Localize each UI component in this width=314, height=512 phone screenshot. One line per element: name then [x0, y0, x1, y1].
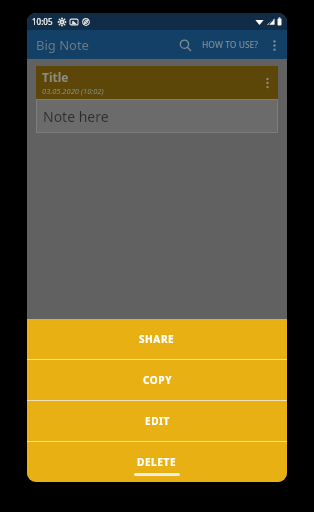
staticText: Big Note: [36, 36, 89, 54]
button[interactable]: Title: [36, 66, 278, 133]
staticText: Note here: [43, 107, 109, 126]
staticText: 10:05: [32, 16, 53, 27]
button[interactable]: More options: [263, 34, 285, 56]
staticText: HOW TO USE?: [202, 39, 259, 51]
button[interactable]: COPY: [27, 360, 287, 400]
button[interactable]: HOW TO USE?: [198, 34, 263, 56]
staticText: SHARE: [139, 332, 175, 346]
button[interactable]: DELETE: [27, 442, 287, 482]
staticText: EDIT: [145, 414, 170, 428]
staticText: COPY: [143, 373, 172, 387]
button[interactable]: Search: [172, 32, 198, 58]
staticText: 03.05.2020 (10:02): [42, 86, 104, 96]
staticText: Title: [42, 69, 69, 85]
button[interactable]: Note options: [256, 72, 278, 94]
staticText: DELETE: [137, 455, 177, 469]
button[interactable]: SHARE: [27, 319, 287, 359]
button[interactable]: EDIT: [27, 401, 287, 441]
